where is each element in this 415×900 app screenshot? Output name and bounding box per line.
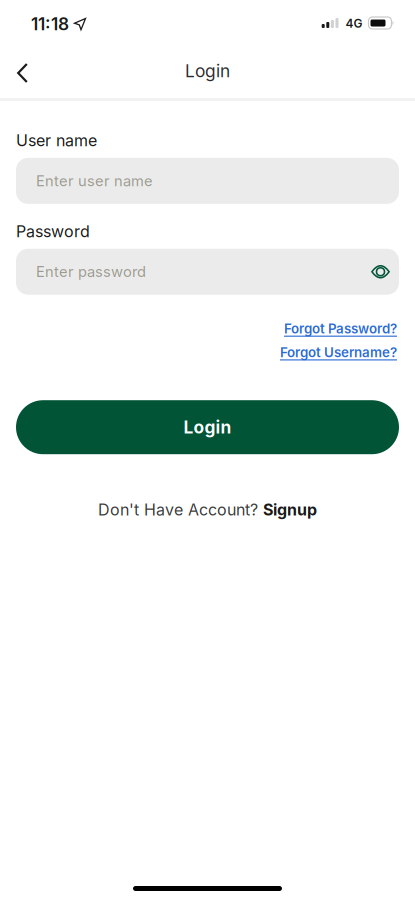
button[interactable]: Forgot Username? [280, 344, 397, 360]
staticText: 11:18 [31, 14, 69, 34]
staticText: Forgot Username? [280, 344, 397, 360]
button[interactable]: Show password [371, 263, 399, 280]
staticText: Login [185, 61, 230, 81]
staticText: Forgot Password? [284, 321, 397, 336]
button[interactable]: Login [16, 400, 399, 454]
button[interactable]: Forgot Password? [284, 321, 397, 336]
button[interactable]: Signup [263, 500, 317, 519]
staticText: User name [16, 131, 97, 150]
staticText: Login [183, 417, 231, 437]
textField[interactable]: Enter password [36, 263, 399, 280]
staticText: Password [16, 222, 90, 241]
staticText: Signup [263, 500, 317, 519]
staticText: 4G [345, 16, 362, 31]
textField[interactable]: Enter user name [36, 172, 399, 189]
staticText: Enter user name [36, 172, 153, 189]
staticText: Enter password [36, 263, 146, 280]
button[interactable]: Back [0, 59, 28, 83]
staticText: Don't Have Account? [98, 500, 258, 519]
